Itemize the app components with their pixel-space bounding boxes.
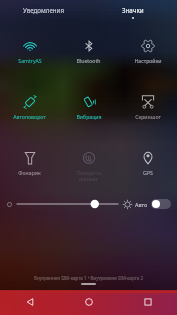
staticText: SamtryAS xyxy=(18,57,42,64)
button[interactable]: Bluetooth xyxy=(59,25,118,81)
button[interactable]: GPS xyxy=(118,137,177,193)
button[interactable]: Уведомления xyxy=(0,0,88,25)
staticText: Авто xyxy=(135,201,148,208)
staticText: GPS xyxy=(143,169,153,176)
button[interactable]: Recents xyxy=(118,288,177,315)
button[interactable]: Home xyxy=(59,288,118,315)
button[interactable]: Скриншот xyxy=(118,81,177,137)
staticText: Скриншот xyxy=(135,113,161,120)
staticText: Передача данных xyxy=(76,169,101,182)
button[interactable]: Фонарик xyxy=(0,137,59,193)
staticText: Уведомления xyxy=(23,6,65,14)
staticText: Настройки xyxy=(134,57,162,64)
staticText: Значки xyxy=(122,6,144,14)
button[interactable]: Автоповорот xyxy=(0,81,59,137)
staticText: Внутренняя SIM-карта 1 • Внутренняя SIM-… xyxy=(0,275,177,281)
staticText: Автоповорот xyxy=(13,113,46,120)
button[interactable]: Auto brightness toggle xyxy=(151,199,171,209)
button[interactable]: Значки xyxy=(88,0,177,25)
button[interactable]: Настройки xyxy=(118,25,177,81)
staticText: Фонарик xyxy=(18,169,41,176)
button[interactable]: Вибрация xyxy=(59,81,118,137)
staticText: Вибрация xyxy=(76,113,102,120)
staticText: Bluetooth xyxy=(76,57,101,64)
button[interactable]: Back xyxy=(0,288,59,315)
button[interactable]: Передача данных xyxy=(59,137,118,193)
button[interactable]: SamtryAS xyxy=(0,25,59,81)
